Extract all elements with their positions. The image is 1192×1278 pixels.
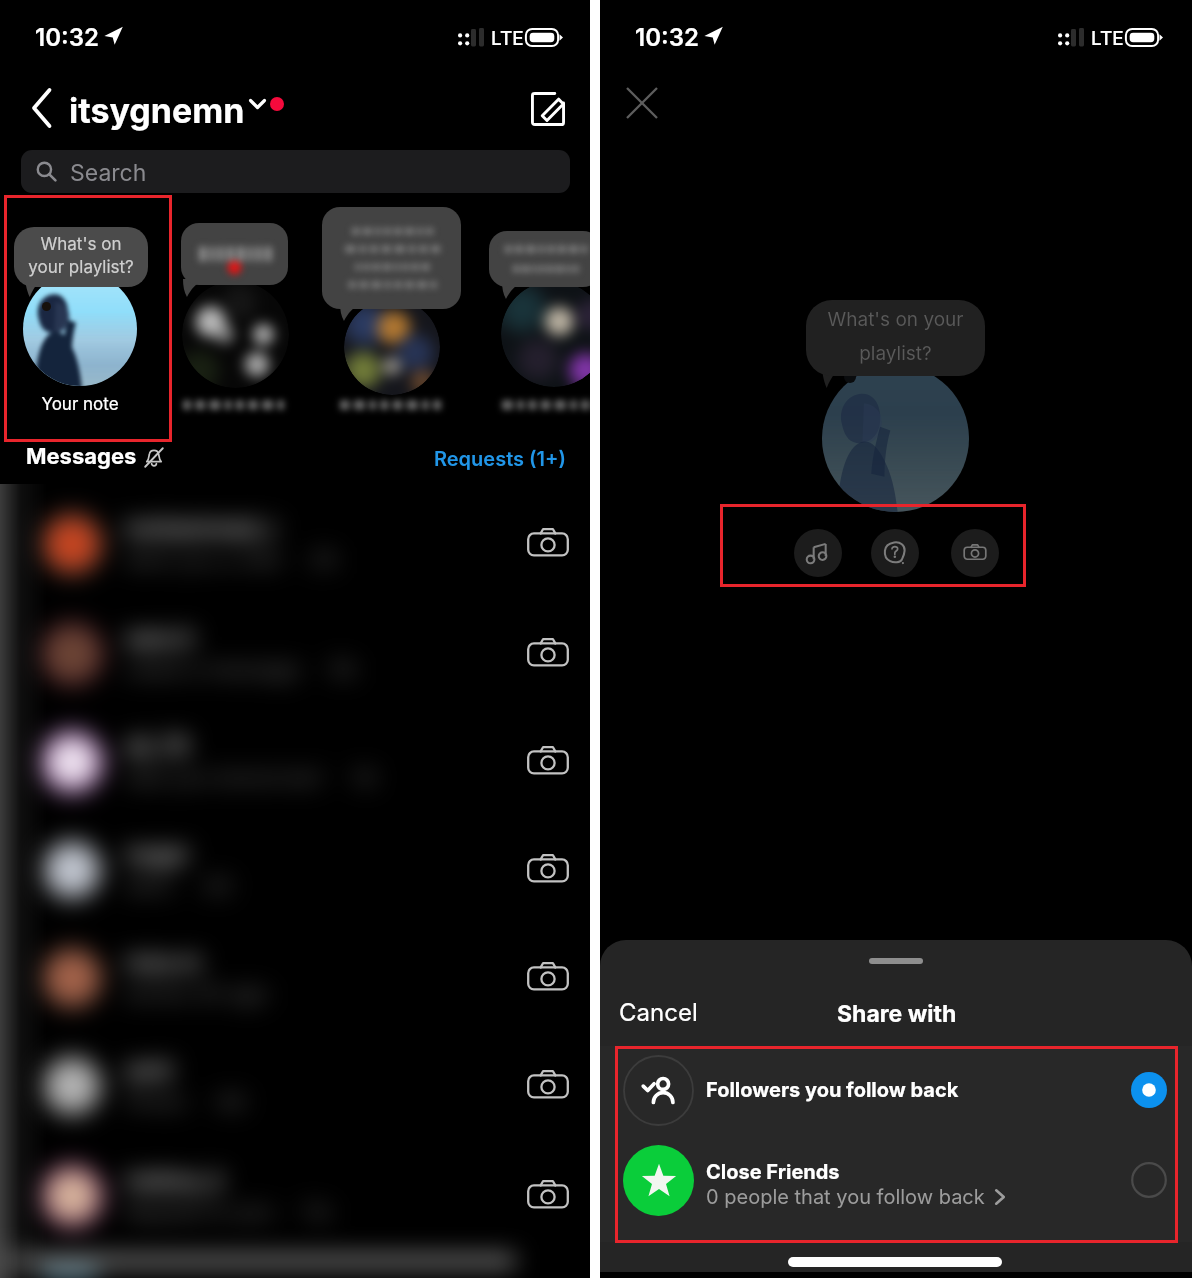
staticText: Sent you a reel · 2h <box>125 546 338 573</box>
staticText: LTE <box>491 27 524 50</box>
staticText: Share with <box>837 1000 957 1028</box>
staticText: Replied to you · 1w <box>125 1198 331 1225</box>
staticText: LTE <box>1091 27 1124 50</box>
button[interactable]: Note <box>181 223 288 285</box>
staticText: Search <box>70 159 147 187</box>
button[interactable]: Search <box>21 150 570 193</box>
button[interactable]: Note <box>489 231 590 287</box>
button[interactable]: Camera <box>951 529 999 577</box>
button[interactable]: Camera <box>526 740 570 784</box>
button[interactable]: Close Friends <box>600 1136 1192 1224</box>
staticText: negar <box>125 840 190 868</box>
button[interactable]: Your note <box>23 272 137 386</box>
button[interactable]: Conversation ${i + 1} <box>0 1032 590 1140</box>
staticText: 0 people that you follow back <box>706 1185 985 1209</box>
button[interactable]: Messages <box>26 443 137 470</box>
button[interactable]: Camera <box>526 522 570 566</box>
staticText: itsygnemn <box>69 90 245 131</box>
staticText: Followers you follow back <box>706 1078 959 1102</box>
button[interactable]: Open note <box>344 299 440 395</box>
button[interactable]: Conversation ${i + 1} <box>0 816 590 924</box>
staticText: What's on your playlist? <box>14 234 148 278</box>
staticText: sara.h <box>125 624 195 652</box>
button[interactable]: Camera <box>526 956 570 1000</box>
button[interactable]: Note <box>14 227 148 287</box>
button[interactable]: Note <box>322 207 461 309</box>
staticText: mohammad_r <box>125 514 277 542</box>
staticText: Active 3h ago <box>125 980 269 1007</box>
button[interactable]: Back <box>26 84 66 132</box>
button[interactable]: itsygnemn <box>69 90 245 131</box>
button[interactable]: Your note photo <box>822 365 969 512</box>
staticText: ali_78 <box>125 732 189 760</box>
button[interactable]: Cancel <box>619 998 698 1027</box>
button[interactable]: Followers you follow back <box>600 1046 1192 1134</box>
staticText: Messages <box>26 443 137 470</box>
button[interactable]: Add prompt <box>871 529 919 577</box>
staticText: Liked a message · 5h <box>125 656 357 683</box>
button[interactable]: Open note <box>182 281 289 388</box>
button[interactable]: Camera <box>526 632 570 676</box>
button[interactable]: Requests (1+) <box>434 447 566 471</box>
staticText: Cancel <box>619 998 698 1027</box>
button[interactable]: Add music <box>794 529 842 577</box>
staticText: What's on your playlist? <box>806 308 985 365</box>
button[interactable]: Conversation ${i + 1} <box>0 490 590 598</box>
staticText: amir <box>125 1056 175 1084</box>
button[interactable]: Conversation ${i + 1} <box>0 708 590 816</box>
button[interactable]: New message <box>526 87 570 131</box>
staticText: See you tomorrow! · 1d <box>125 764 376 791</box>
staticText: 10:32 <box>35 23 99 52</box>
staticText: Requests (1+) <box>434 447 566 471</box>
button[interactable]: Close <box>619 80 665 126</box>
button[interactable]: Camera <box>526 848 570 892</box>
button[interactable]: Camera <box>526 1174 570 1218</box>
staticText: Photo · 4d <box>125 1088 245 1115</box>
button[interactable]: Camera <box>526 1064 570 1108</box>
button[interactable]: Conversation ${i + 1} <box>0 924 590 1032</box>
staticText: reza.m <box>125 948 202 976</box>
staticText: 10:32 <box>635 23 699 52</box>
staticText: Close Friends <box>706 1160 840 1184</box>
staticText: mahsa_k <box>125 1166 224 1194</box>
staticText: Your note <box>20 394 140 415</box>
button[interactable]: Conversation ${i + 1} <box>0 600 590 708</box>
button[interactable]: Open note <box>501 281 590 387</box>
button[interactable]: Note prompt <box>806 300 985 376</box>
button[interactable]: Conversation ${i + 1} <box>0 1142 590 1250</box>
staticText: Sent · 2d <box>125 872 231 899</box>
